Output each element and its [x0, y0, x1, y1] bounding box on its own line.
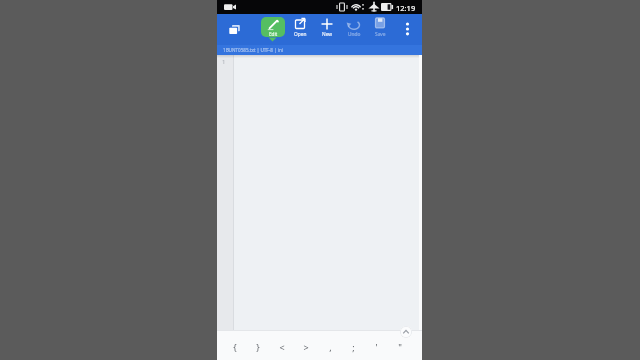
staticText: New [322, 31, 333, 38]
staticText: " [398, 341, 402, 353]
button[interactable] [399, 18, 416, 44]
staticText: , [329, 341, 332, 353]
staticText: 1 [222, 58, 226, 66]
button[interactable]: ; [343, 337, 363, 357]
staticText: ' [375, 341, 378, 353]
button[interactable]: Edit [261, 17, 285, 37]
button[interactable]: ' [366, 337, 386, 357]
button[interactable]: Save [368, 17, 392, 48]
button[interactable]: { [225, 337, 245, 357]
staticText: Edit [269, 31, 278, 37]
button[interactable] [400, 326, 412, 338]
staticText: { [233, 341, 237, 353]
staticText: Undo [348, 31, 361, 38]
button[interactable]: Open [288, 17, 312, 48]
button[interactable]: > [296, 337, 316, 357]
staticText: Open [294, 31, 307, 38]
button[interactable]: New [315, 17, 339, 48]
button[interactable]: } [248, 337, 268, 357]
staticText: 1BUNT0585.txt | UTF-8 | ini [223, 47, 283, 53]
staticText: Save [375, 31, 386, 38]
button[interactable]: Undo [342, 17, 366, 48]
staticText: 12:19 [396, 3, 416, 13]
button[interactable]: , [320, 337, 340, 357]
staticText: ; [352, 341, 355, 353]
button[interactable] [223, 17, 246, 40]
staticText: > [303, 341, 309, 353]
staticText: } [256, 341, 260, 353]
button[interactable]: < [272, 337, 292, 357]
button[interactable]: " [390, 337, 410, 357]
staticText: < [279, 341, 285, 353]
